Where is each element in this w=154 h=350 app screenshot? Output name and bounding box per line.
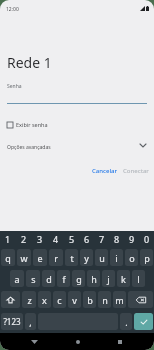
button[interactable]: j	[102, 270, 115, 287]
button[interactable]: Shift	[1, 291, 20, 308]
staticText: l	[137, 273, 140, 285]
staticText: k	[121, 273, 126, 285]
button[interactable]: Conectar	[120, 163, 152, 179]
button[interactable]: m	[113, 291, 126, 308]
staticText: Rede 1	[7, 53, 52, 72]
button[interactable]: x	[38, 291, 51, 308]
button[interactable]: Back	[26, 333, 43, 350]
button[interactable]: ?123	[1, 313, 23, 330]
button[interactable]: t	[65, 249, 78, 266]
button[interactable]: p	[140, 249, 153, 266]
button[interactable]: a	[10, 270, 24, 287]
button[interactable]: i	[110, 249, 123, 266]
button[interactable]: c	[53, 291, 66, 308]
staticText: 7	[99, 233, 105, 245]
button[interactable]: Opções avançadas	[0, 141, 154, 154]
button[interactable]: ,	[25, 313, 36, 330]
button[interactable]: f	[57, 270, 70, 287]
staticText: 2	[21, 233, 27, 245]
other: Signal strength	[140, 6, 145, 11]
staticText: f	[62, 273, 66, 285]
staticText: z	[27, 294, 32, 306]
staticText: 1	[5, 233, 11, 245]
button[interactable]: s	[26, 270, 40, 287]
button[interactable]: k	[117, 270, 130, 287]
staticText: s	[31, 273, 36, 285]
staticText: 8	[114, 233, 120, 245]
button[interactable]: e	[33, 249, 47, 266]
staticText: 12:00	[6, 6, 19, 13]
staticText: 9	[129, 233, 135, 245]
button[interactable]: Cancelar	[89, 163, 120, 179]
staticText: n	[102, 294, 108, 306]
staticText: Conectar	[123, 167, 149, 175]
staticText: i	[115, 252, 118, 264]
staticText: c	[57, 294, 62, 306]
staticText: 3	[37, 233, 43, 245]
staticText: Cancelar	[92, 167, 117, 175]
button[interactable]: Home	[69, 333, 86, 350]
button[interactable]: g	[72, 270, 85, 287]
staticText: 4	[53, 233, 59, 245]
staticText: Senha	[7, 83, 22, 90]
staticText: 5	[69, 233, 75, 245]
button[interactable]: w	[17, 249, 31, 266]
button[interactable]: .	[120, 313, 132, 330]
button[interactable]: Recents	[111, 333, 128, 350]
button[interactable]: y	[80, 249, 93, 266]
staticText: v	[72, 294, 77, 306]
staticText: w	[20, 252, 28, 264]
button[interactable]: d	[42, 270, 55, 287]
staticText: ?123	[3, 316, 21, 327]
staticText: r	[54, 252, 58, 264]
other: Battery	[146, 6, 149, 11]
staticText: j	[107, 273, 110, 285]
button[interactable]: b	[83, 291, 96, 308]
button[interactable]: o	[125, 249, 138, 266]
staticText: d	[46, 273, 52, 285]
staticText: t	[70, 252, 74, 264]
staticText: Exibir senha	[16, 121, 48, 128]
staticText: .	[125, 316, 128, 328]
staticText: ,	[29, 316, 32, 328]
button[interactable]: u	[95, 249, 108, 266]
button[interactable]: Backspace	[128, 291, 153, 308]
button[interactable]: n	[98, 291, 111, 308]
button[interactable]: Exibir senha	[7, 119, 48, 130]
button[interactable]: q	[1, 249, 15, 266]
button[interactable]: v	[68, 291, 81, 308]
staticText: 0	[144, 233, 150, 245]
button[interactable]: z	[22, 291, 36, 308]
button[interactable]: l	[132, 270, 145, 287]
staticText: q	[5, 252, 11, 264]
staticText: b	[87, 294, 93, 306]
button[interactable]: h	[87, 270, 100, 287]
staticText: m	[115, 294, 124, 306]
staticText: h	[91, 273, 97, 285]
staticText: x	[42, 294, 47, 306]
staticText: g	[76, 273, 82, 285]
staticText: p	[144, 252, 150, 264]
staticText: o	[129, 252, 135, 264]
button[interactable]: Enter	[134, 313, 153, 330]
staticText: e	[37, 252, 43, 264]
staticText: Opções avançadas	[7, 144, 51, 151]
staticText: 6	[84, 233, 90, 245]
staticText: y	[84, 252, 89, 264]
button[interactable]: r	[49, 249, 63, 266]
staticText: a	[14, 273, 20, 285]
staticText: u	[99, 252, 105, 264]
